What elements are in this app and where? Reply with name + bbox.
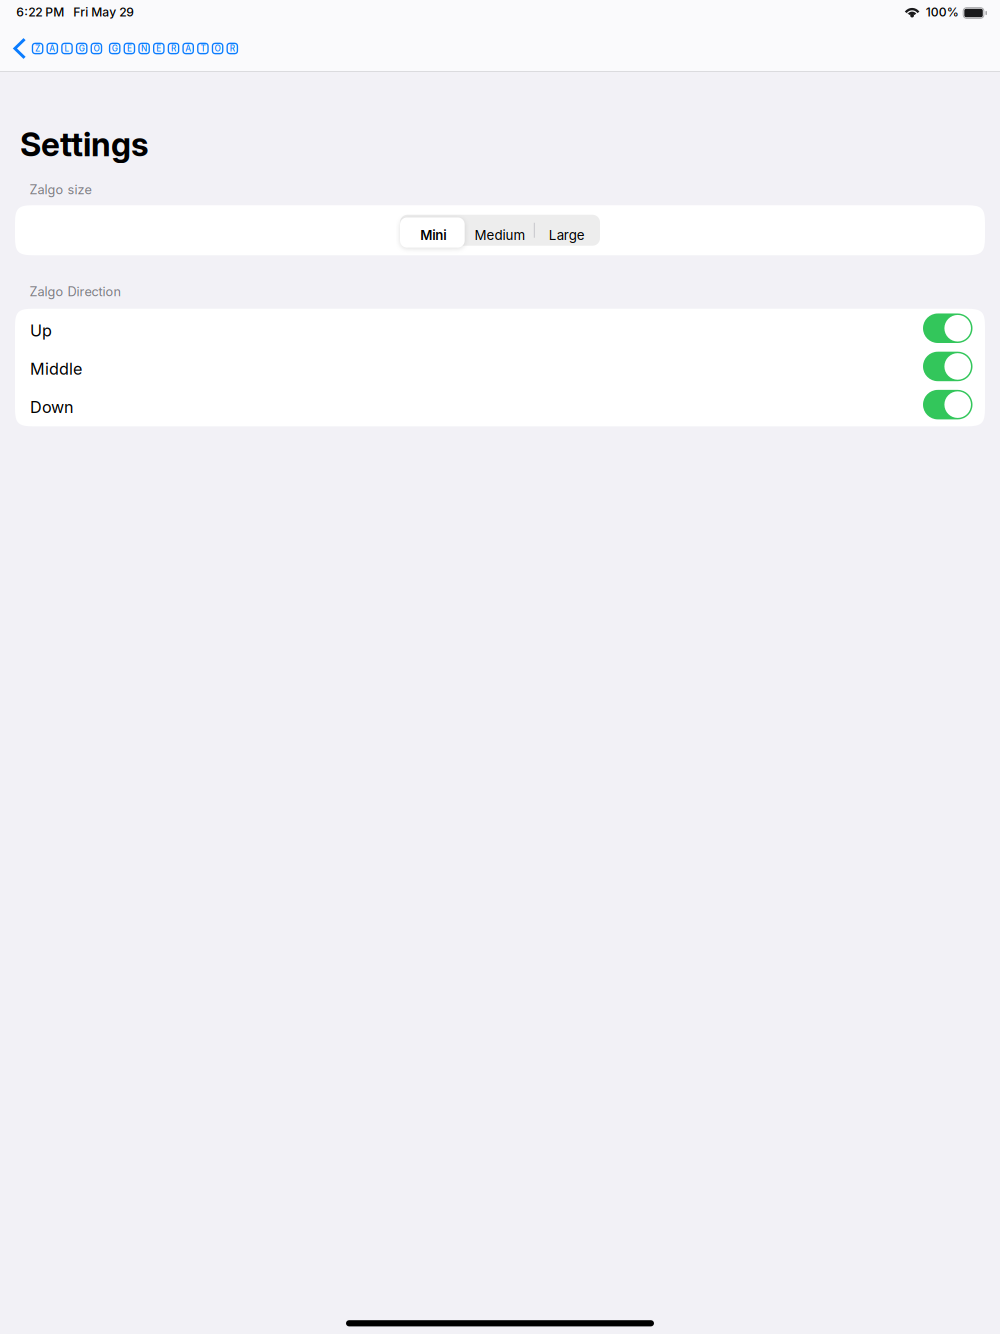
staticText: R xyxy=(171,43,176,53)
button[interactable]: Mini xyxy=(400,215,467,246)
staticText: Zalgo size xyxy=(29,182,91,197)
staticText: T xyxy=(200,43,205,53)
staticText: Down xyxy=(30,397,74,417)
staticText: Up xyxy=(30,321,52,340)
staticText: A xyxy=(49,43,55,53)
button[interactable]: Large xyxy=(533,215,600,246)
staticText: Mini xyxy=(420,227,446,243)
staticText: Settings xyxy=(20,125,149,164)
staticText: 100% xyxy=(926,5,959,19)
staticText: Large xyxy=(549,227,585,243)
staticText: R xyxy=(230,43,235,53)
staticText: A xyxy=(185,43,191,53)
button[interactable]: Medium xyxy=(467,215,533,246)
staticText: O xyxy=(215,43,221,53)
staticText: Fri May 29 xyxy=(73,5,134,19)
staticText: E xyxy=(127,43,132,53)
staticText: G xyxy=(79,43,85,53)
staticText: Middle xyxy=(30,359,82,379)
button[interactable]: Back to Zalgo Generator xyxy=(0,27,246,69)
staticText: E xyxy=(156,43,161,53)
staticText: O xyxy=(93,43,99,53)
staticText: G xyxy=(112,43,118,53)
button[interactable]: Down xyxy=(15,385,985,424)
staticText: Z xyxy=(35,43,40,53)
staticText: N xyxy=(141,43,147,53)
button[interactable]: Up xyxy=(15,309,985,347)
staticText: L xyxy=(64,43,69,53)
staticText: 6:22 PM xyxy=(16,5,64,19)
staticText: Medium xyxy=(474,227,525,243)
button[interactable]: Middle xyxy=(15,347,985,385)
staticText: Zalgo Direction xyxy=(29,284,121,299)
